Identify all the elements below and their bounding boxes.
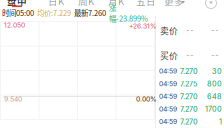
- staticText: 04:59: [159, 80, 177, 88]
- button[interactable]: 买价: [0, 0, 224, 11]
- button[interactable]: 日K: [48, 0, 68, 8]
- staticText: 卖价: [160, 24, 178, 37]
- staticText: 7.270: [180, 117, 198, 126]
- staticText: 0.00%: [136, 95, 157, 103]
- button[interactable]: 更多: [164, 0, 184, 8]
- button[interactable]: 盘中: [7, 0, 27, 8]
- staticText: 04:59: [159, 105, 177, 113]
- staticText: 04:59: [159, 92, 177, 100]
- staticText: 04:59: [159, 117, 177, 126]
- staticText: 7.270: [180, 105, 198, 113]
- staticText: --: [211, 25, 219, 35]
- staticText: 7.275: [180, 80, 197, 88]
- staticText: --: [186, 25, 194, 35]
- staticText: 均价:7.229: [37, 7, 71, 18]
- staticText: 月K: [108, 0, 124, 8]
- button[interactable]: Chart settings: [204, 0, 218, 10]
- button[interactable]: 04:59: [0, 0, 224, 11]
- button[interactable]: 五日: [136, 0, 156, 8]
- staticText: 04:59: [159, 67, 177, 75]
- staticText: 买价: [160, 49, 178, 62]
- staticText: 7.270: [180, 92, 198, 101]
- button[interactable]: 04:59: [0, 0, 224, 11]
- staticText: 1: [219, 117, 222, 126]
- staticText: 最新7.260: [74, 7, 106, 18]
- staticText: 日K: [48, 0, 64, 8]
- staticText: 9.540: [4, 95, 22, 103]
- button[interactable]: 04:59: [0, 0, 224, 11]
- staticText: 涨幅-23.899%: [109, 2, 148, 24]
- staticText: 1700: [205, 105, 222, 113]
- staticText: 五日: [136, 0, 156, 8]
- staticText: 648: [207, 92, 222, 101]
- staticText: 30: [212, 67, 222, 76]
- staticText: --: [211, 50, 219, 60]
- staticText: 12.050: [4, 21, 25, 29]
- button[interactable]: 周K: [78, 0, 98, 8]
- button[interactable]: 月K: [108, 0, 128, 8]
- button[interactable]: 04:59: [0, 0, 224, 11]
- staticText: 盘中: [7, 0, 27, 8]
- staticText: 时间05:00: [2, 7, 34, 18]
- staticText: 7.270: [180, 67, 198, 76]
- staticText: 更多: [164, 0, 184, 8]
- staticText: 800: [207, 80, 222, 88]
- staticText: +26.31%: [129, 22, 157, 30]
- button[interactable]: 04:59: [0, 0, 224, 11]
- staticText: 周K: [78, 0, 94, 8]
- button[interactable]: 卖价: [0, 0, 224, 11]
- staticText: --: [186, 50, 194, 60]
